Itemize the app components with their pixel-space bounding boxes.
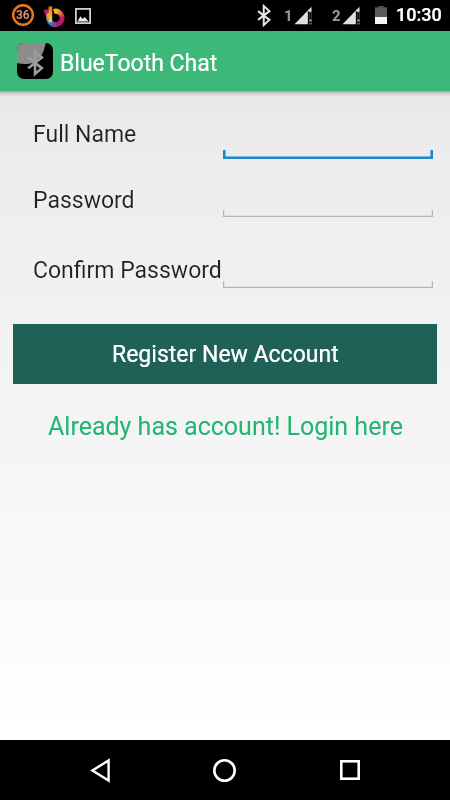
button[interactable]: Home (200, 746, 248, 794)
staticText: BlueTooth Chat (60, 50, 218, 77)
staticText: Full Name (33, 121, 137, 148)
staticText: 1 (284, 7, 293, 25)
staticText: Already has account! Login here (48, 412, 403, 441)
staticText: 36 (16, 8, 30, 22)
button[interactable]: Already has account! Login here (0, 405, 450, 447)
staticText: Password (33, 187, 135, 214)
staticText: Confirm Password (33, 257, 222, 284)
button[interactable]: Register New Account (13, 324, 437, 384)
staticText: 10:30 (396, 4, 442, 25)
button[interactable]: Back (76, 746, 124, 794)
staticText: Register New Account (112, 341, 339, 368)
button[interactable]: Recent apps (326, 746, 374, 794)
staticText: 2 (332, 7, 341, 25)
